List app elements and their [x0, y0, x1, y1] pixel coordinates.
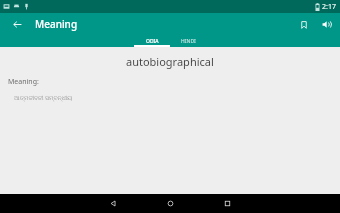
staticText: 2:17 [322, 2, 336, 12]
button[interactable]: HINDI [170, 35, 206, 47]
button[interactable]: Recents [199, 194, 256, 213]
button[interactable]: Pronounce [318, 16, 335, 33]
button[interactable]: ODIA [134, 35, 170, 47]
staticText: ଆତ୍ମଜୀବନୀ ସମ୍ବନ୍ଧୀୟ [14, 94, 73, 102]
staticText: Meaning [35, 17, 78, 31]
button[interactable]: Back [8, 15, 26, 33]
staticText: Meaning: [8, 77, 39, 87]
staticText: autobiographical [126, 54, 214, 69]
button[interactable]: Home [142, 194, 199, 213]
button[interactable]: Bookmark [295, 16, 312, 33]
staticText: ODIA [146, 38, 159, 45]
staticText: HINDI [181, 38, 196, 45]
button[interactable]: Back [85, 194, 142, 213]
